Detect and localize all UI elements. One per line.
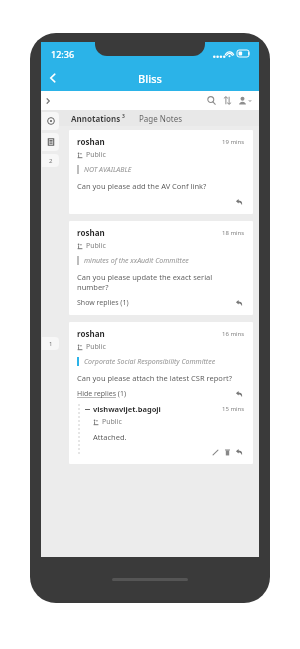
button[interactable]: roshan [69, 322, 253, 464]
button[interactable]: Edit [209, 446, 221, 458]
staticText: vishwavijet.bagoji [93, 404, 161, 414]
button[interactable]: Show replies (1) [77, 297, 129, 309]
button[interactable]: roshan [69, 130, 253, 214]
button[interactable]: Search [203, 91, 219, 110]
staticText: 19 mins [222, 138, 245, 146]
staticText: Page Notes [139, 113, 182, 124]
staticText: 1 [49, 340, 53, 348]
button[interactable]: Hide replies [77, 388, 127, 400]
staticText: Public [86, 342, 106, 352]
staticText: 12:36 [51, 48, 75, 60]
staticText: Annotations [71, 113, 121, 124]
staticText: 18 mins [222, 229, 245, 237]
staticText: roshan [77, 136, 105, 147]
button[interactable]: Panel tab [42, 154, 59, 167]
button[interactable]: Reply [233, 388, 245, 400]
staticText: Can you please attach the latest CSR rep… [77, 373, 232, 383]
button[interactable]: Expand [41, 91, 55, 110]
staticText: Public [86, 241, 106, 251]
staticText: 16 mins [222, 330, 245, 338]
button[interactable]: Panel tab [42, 133, 59, 151]
button[interactable]: Sort [219, 91, 235, 110]
button[interactable]: Panel tab [42, 112, 59, 130]
button[interactable]: Panel tab [42, 337, 59, 350]
staticText: Corporate Social Responsibility Committe… [84, 357, 216, 367]
staticText: minutes of the xxAudit Committee [84, 256, 189, 266]
button[interactable]: Reply [233, 446, 245, 458]
button[interactable]: Annotations [69, 113, 127, 124]
staticText: 2 [49, 157, 53, 165]
staticText: Show replies (1) [77, 298, 129, 308]
staticText: Public [86, 150, 106, 160]
staticText: roshan [77, 227, 105, 238]
button[interactable]: Page Notes [137, 113, 184, 124]
button[interactable]: Delete [221, 446, 233, 458]
button[interactable]: Reply [233, 297, 245, 309]
staticText: Can you please add the AV Conf link? [77, 181, 207, 191]
staticText: Attached. [93, 432, 127, 442]
staticText: Hide replies [77, 389, 116, 399]
staticText: 3 [122, 113, 125, 120]
staticText: NOT AVAILABLE [84, 165, 132, 175]
staticText: 15 mins [222, 405, 245, 413]
button[interactable]: roshan [69, 221, 253, 315]
staticText: Bliss [138, 71, 162, 86]
staticText: Public [102, 417, 122, 427]
button[interactable]: Account [235, 91, 255, 110]
staticText: roshan [77, 328, 105, 339]
staticText: (1) [116, 389, 127, 399]
button[interactable]: Reply [233, 196, 245, 208]
button[interactable]: Back [41, 66, 65, 90]
staticText: Can you please update the exact serial n… [77, 272, 245, 292]
